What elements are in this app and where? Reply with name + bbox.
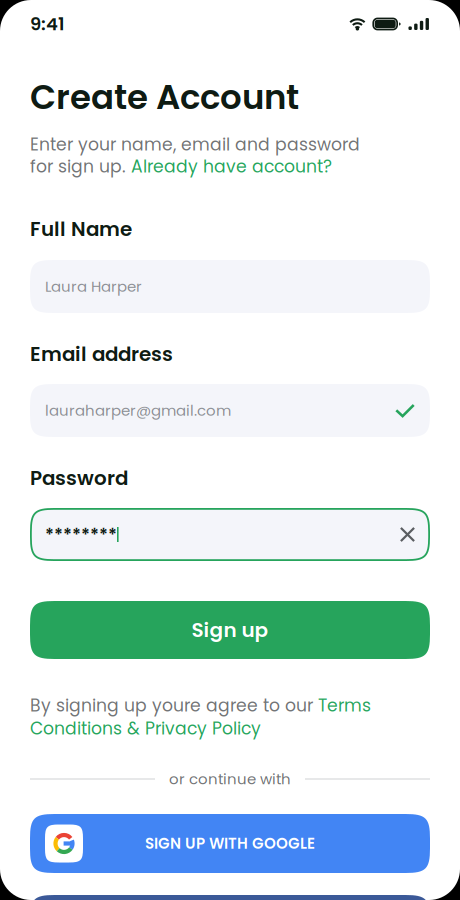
staticText: Enter your name, email and password — [30, 132, 360, 157]
staticText: SIGN UP WITH GOOGLE — [145, 833, 315, 854]
button[interactable]: SIGN UP WITH FACEBOOK — [30, 895, 430, 900]
button[interactable]: Conditions & Privacy Policy — [30, 716, 261, 741]
button[interactable]: Terms — [318, 693, 371, 718]
button[interactable]: Laura Harper — [30, 260, 430, 313]
staticText: Terms — [318, 693, 371, 718]
button[interactable]: ******** — [30, 508, 430, 561]
staticText: Sign up — [191, 616, 268, 644]
staticText: Already have account? — [131, 154, 332, 179]
staticText: for sign up. — [30, 154, 131, 179]
staticText: By signing up youre agree to our — [30, 693, 318, 718]
button[interactable]: Sign up — [30, 601, 430, 659]
staticText: 9:41 — [30, 11, 65, 37]
button[interactable]: SIGN UP WITH GOOGLE — [30, 814, 430, 873]
button[interactable]: Already have account? — [131, 154, 332, 179]
staticText: Password — [30, 464, 128, 492]
button[interactable]: lauraharper@gmail.com — [30, 384, 430, 437]
staticText: Create Account — [30, 73, 299, 121]
staticText: ******** — [45, 522, 117, 547]
staticText: or continue with — [169, 768, 291, 789]
staticText: Conditions & Privacy Policy — [30, 716, 261, 741]
staticText: Email address — [30, 340, 173, 368]
staticText: lauraharper@gmail.com — [45, 400, 231, 421]
staticText: Laura Harper — [45, 276, 142, 297]
staticText: Full Name — [30, 215, 132, 243]
